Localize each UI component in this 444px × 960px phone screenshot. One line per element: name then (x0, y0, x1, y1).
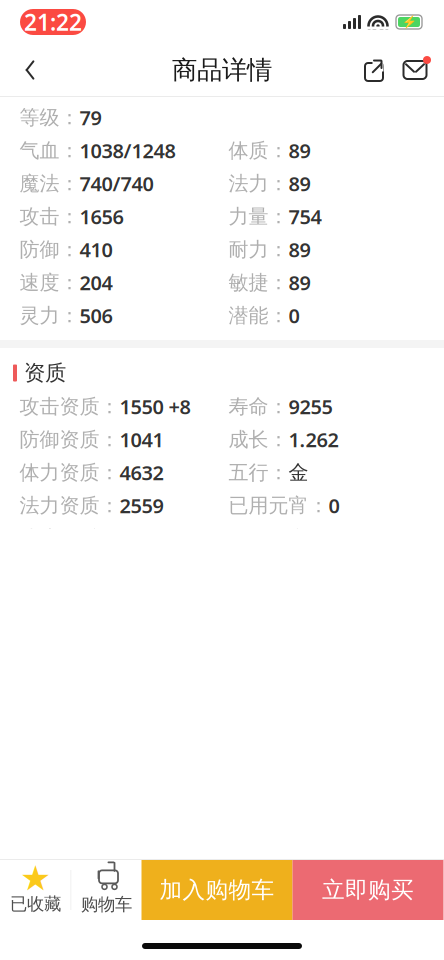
staticText: 法力： (228, 171, 288, 196)
staticText: 21:22 (24, 7, 82, 37)
staticText: 89 (288, 236, 310, 263)
staticText: ⚡ (401, 15, 416, 29)
staticText: 1550 +8 (119, 393, 190, 420)
staticText: 1656 (79, 203, 123, 230)
button[interactable]: 加入购物车 (141, 860, 292, 920)
staticText: 金 (288, 460, 308, 485)
staticText: 气血： (19, 138, 79, 163)
staticText: 资质 (24, 360, 66, 386)
staticText: 商品详情 (172, 54, 272, 85)
staticText: 加入购物车 (159, 876, 274, 904)
staticText: 魔法： (19, 171, 79, 196)
staticText: 成长： (228, 427, 288, 452)
staticText: 防御： (19, 237, 79, 262)
staticText: 购物车 (81, 894, 132, 915)
staticText: 体力资质： (19, 460, 119, 485)
staticText: ★ (20, 859, 51, 898)
staticText: 1038/1248 (79, 137, 175, 164)
button[interactable]: Share (354, 48, 394, 92)
staticText: 0 (288, 302, 299, 329)
button[interactable]: 立即购买 (292, 860, 443, 920)
staticText: 法力资质： (19, 493, 119, 518)
staticText: 1041 (119, 426, 163, 453)
staticText: 攻击： (19, 204, 79, 229)
staticText: 89 (288, 170, 310, 197)
staticText: 89 (288, 269, 310, 296)
button[interactable]: Back (8, 48, 52, 92)
button[interactable]: 购物车 (71, 860, 141, 920)
staticText: 已收藏 (10, 893, 61, 915)
staticText: 204 (79, 269, 112, 296)
staticText: 力量： (228, 204, 288, 229)
staticText: 4632 (119, 459, 163, 486)
staticText: 攻击资质： (19, 394, 119, 419)
staticText: 9255 (288, 393, 332, 420)
staticText: 2559 (119, 492, 163, 519)
staticText: 410 (79, 236, 112, 263)
staticText: 防御资质： (19, 427, 119, 452)
staticText: 体质： (228, 138, 288, 163)
staticText: 1.262 (288, 426, 338, 453)
button[interactable]: ★ (0, 860, 70, 920)
staticText: 0 (328, 492, 339, 519)
staticText: 潜能： (228, 303, 288, 328)
staticText: 敏捷： (228, 270, 288, 295)
staticText: 灵力： (19, 303, 79, 328)
staticText: 754 (288, 203, 321, 230)
staticText: 五行： (228, 460, 288, 485)
staticText: 740/740 (79, 170, 153, 197)
staticText: 506 (79, 302, 112, 329)
staticText: 已用元宵： (228, 493, 328, 518)
button[interactable]: Messages (394, 48, 436, 92)
staticText: 立即购买 (322, 876, 414, 904)
staticText: 寿命： (228, 394, 288, 419)
staticText: 79 (79, 104, 101, 131)
staticText: 等级： (19, 105, 79, 130)
staticText: 89 (288, 137, 310, 164)
staticText: 速度： (19, 270, 79, 295)
staticText: 耐力： (228, 237, 288, 262)
